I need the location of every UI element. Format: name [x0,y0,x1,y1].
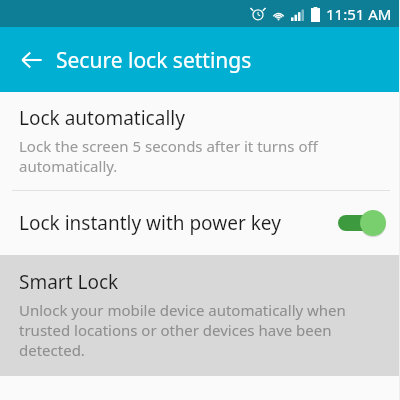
button[interactable]: Back [12,40,52,80]
staticText: Unlock your mobile device automatically … [19,300,384,360]
staticText: Lock the screen 5 seconds after it turns… [19,136,384,176]
button[interactable]: Lock instantly with power key [0,191,400,255]
staticText: Smart Lock [19,269,119,295]
staticText: 11:51 AM [326,4,392,24]
staticText: Lock instantly with power key [19,210,338,236]
button[interactable]: Lock instantly with power key toggle [338,210,386,236]
button[interactable]: Smart Lock [0,255,400,376]
staticText: Secure lock settings [56,46,252,75]
button[interactable]: Lock automatically [0,92,400,190]
staticText: Lock automatically [19,105,185,131]
